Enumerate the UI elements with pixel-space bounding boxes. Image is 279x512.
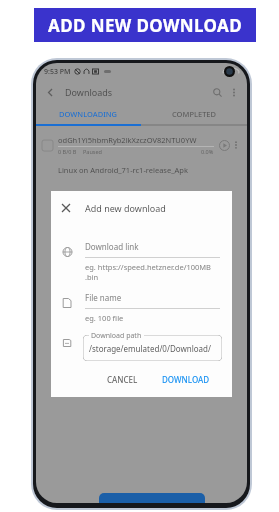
- staticText: 0.0%: [201, 148, 214, 155]
- staticText: eg. 100 file: [85, 313, 124, 323]
- button[interactable]: Item menu: [231, 140, 241, 150]
- staticText: File name: [85, 292, 122, 303]
- staticText: DOWNLOAD: [162, 374, 210, 385]
- staticText: 0 B/0 B: [58, 148, 77, 155]
- staticText: COMPLETED: [172, 109, 217, 119]
- button[interactable]: CANCEL: [99, 370, 146, 389]
- button[interactable]: Resume: [218, 139, 231, 152]
- staticText: ADD NEW DOWNLOAD: [48, 14, 243, 37]
- button[interactable]: Close: [59, 201, 73, 215]
- button[interactable]: Linux on Android_71-rc1-release_Apk: [42, 163, 241, 177]
- button[interactable]: ADD NEW DOWNLOAD: [34, 8, 256, 42]
- button[interactable]: DOWNLOADING: [36, 104, 141, 124]
- button[interactable]: odGh1Yi5hbmRyb2lkXzczOV82NTU0YW: [42, 130, 241, 160]
- button[interactable]: More options: [228, 86, 240, 98]
- staticText: Downloads: [65, 86, 113, 98]
- staticText: eg. https://speed.hetzner.de/100MB .bin: [85, 262, 211, 282]
- staticText: CANCEL: [107, 374, 138, 385]
- button[interactable]: Back: [43, 85, 57, 99]
- button[interactable]: DOWNLOAD: [154, 370, 218, 389]
- staticText: Download link: [85, 241, 139, 252]
- staticText: Download path: [91, 331, 142, 341]
- staticText: Linux on Android_71-rc1-release_Apk: [58, 165, 188, 175]
- staticText: /storage/emulated/0/Download/: [89, 343, 211, 354]
- button[interactable]: Search: [210, 85, 224, 99]
- staticText: 9:53 PM: [44, 67, 71, 77]
- button[interactable]: COMPLETED: [141, 104, 247, 124]
- staticText: DOWNLOADING: [59, 109, 118, 119]
- staticText: odGh1Yi5hbmRyb2lkXzczOV82NTU0YW: [58, 135, 197, 145]
- staticText: Paused: [83, 148, 102, 155]
- staticText: Add new download: [85, 202, 166, 214]
